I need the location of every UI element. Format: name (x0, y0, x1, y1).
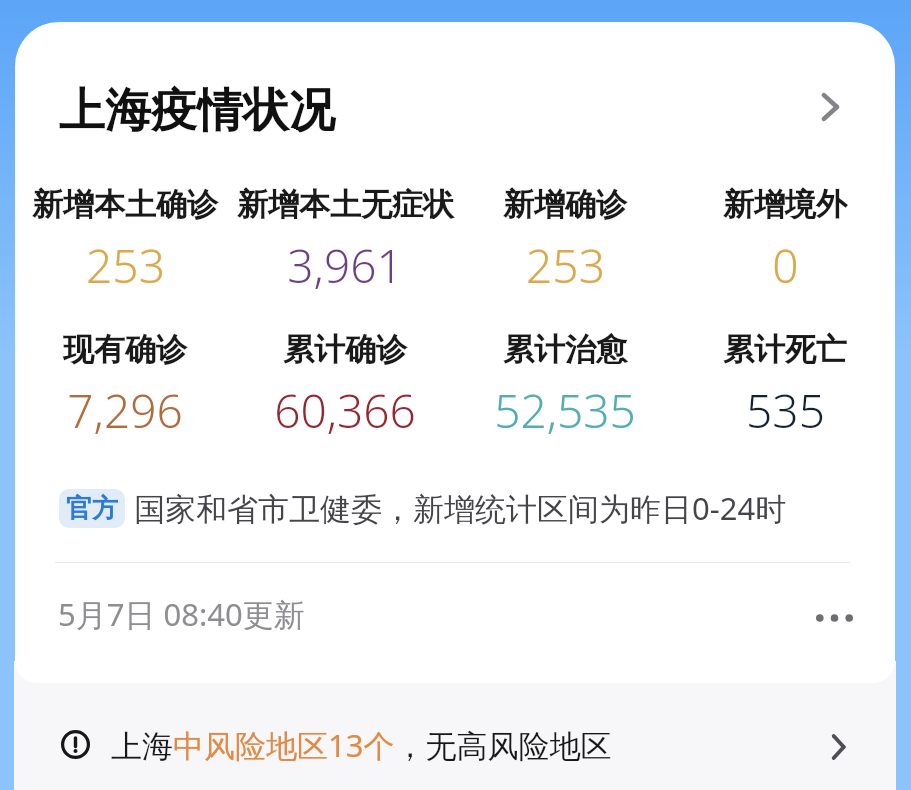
staticText: 新增确诊 (503, 185, 627, 224)
staticText: 253 (86, 234, 165, 297)
staticText: 累计死亡 (723, 330, 847, 369)
staticText: 累计治愈 (503, 330, 627, 369)
staticText: 上海中风险地区13个，无高风险地区 (111, 724, 612, 766)
staticText: 60,366 (274, 379, 416, 442)
button[interactable]: 上海中风险地区13个，无高风险地区 (14, 699, 896, 790)
staticText: 上海疫情状况 (59, 82, 335, 140)
staticText: 新增本土确诊 (32, 185, 218, 224)
staticText: 7,296 (67, 379, 183, 442)
staticText: 新增本土无症状 (237, 185, 454, 224)
staticText: 535 (746, 379, 825, 442)
staticText: 现有确诊 (63, 330, 187, 369)
staticText: 0 (772, 234, 799, 297)
staticText: 52,535 (494, 379, 636, 442)
staticText: 3,961 (287, 234, 403, 297)
button[interactable]: More options (811, 595, 857, 641)
staticText: 5月7日 08:40更新 (58, 593, 305, 635)
staticText: 新增境外 (723, 185, 847, 224)
staticText: 国家和省市卫健委，新增统计区间为昨日0-24时 (134, 487, 787, 529)
staticText: 累计确诊 (283, 330, 407, 369)
staticText: 253 (526, 234, 605, 297)
staticText: 官方 (66, 492, 118, 525)
button[interactable]: 上海疫情状况 (15, 22, 895, 185)
